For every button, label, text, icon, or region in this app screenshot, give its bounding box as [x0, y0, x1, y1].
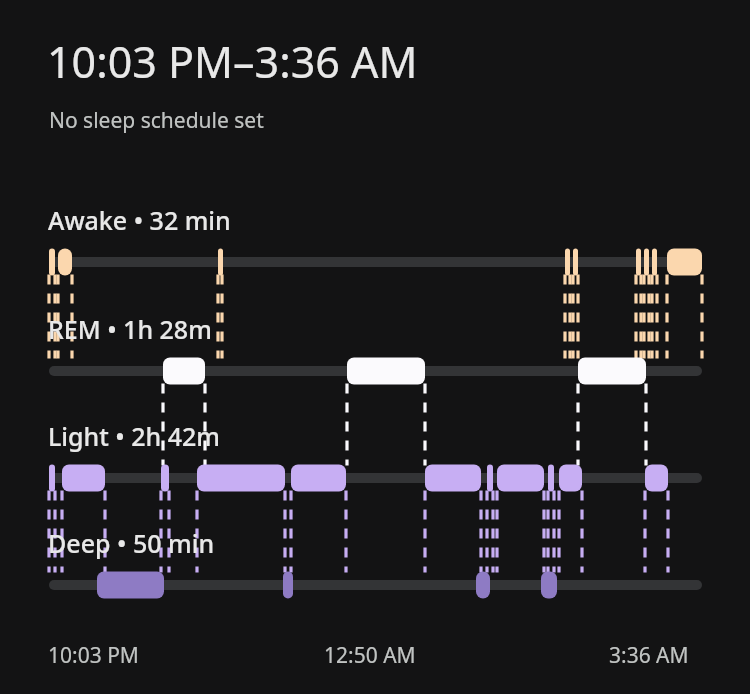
button[interactable]: 10:03 PM–3:36 AM: [0, 0, 750, 694]
staticText: 12:50 AM: [324, 641, 416, 670]
staticText: 10:03 PM: [48, 641, 139, 670]
staticText: 3:36 AM: [609, 641, 689, 670]
staticText: Awake • 32 min: [48, 203, 231, 237]
staticText: REM • 1h 28m: [48, 312, 212, 346]
staticText: No sleep schedule set: [49, 106, 264, 135]
staticText: Light • 2h 42m: [48, 419, 221, 453]
staticText: 10:03 PM–3:36 AM: [47, 32, 418, 91]
staticText: Deep • 50 min: [48, 526, 215, 560]
